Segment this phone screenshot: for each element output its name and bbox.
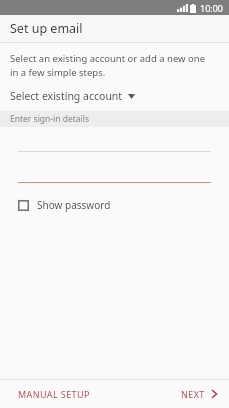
staticText: NEXT (181, 388, 205, 400)
staticText: Select an existing account or add a new … (10, 52, 213, 79)
staticText: MANUAL SETUP (18, 388, 90, 400)
staticText: Set up email (10, 20, 83, 37)
staticText: Show password (37, 198, 111, 212)
button[interactable]: Select existing account (0, 87, 145, 106)
button[interactable] (0, 127, 229, 152)
staticText: 10:00 (200, 2, 224, 14)
button[interactable]: Show password (0, 196, 123, 214)
button[interactable]: MANUAL SETUP (0, 382, 102, 406)
staticText: Select existing account (10, 89, 123, 103)
other: Battery (190, 4, 196, 13)
button[interactable]: NEXT (169, 382, 229, 406)
staticText: Enter sign-in details (10, 113, 90, 125)
button[interactable] (0, 152, 229, 183)
other: Signal strength (177, 4, 186, 12)
